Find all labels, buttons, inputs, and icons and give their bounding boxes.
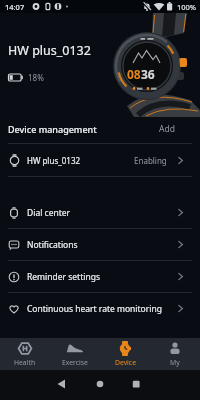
button[interactable]: Continuous heart rate monitoring [0, 293, 200, 324]
button[interactable]: Device [100, 338, 150, 370]
staticText: 100% [177, 2, 197, 12]
staticText: Device management [8, 123, 97, 135]
staticText: 14:07 [5, 2, 25, 12]
staticText: Notifications [27, 239, 78, 251]
button[interactable]: HW plus_0132 [0, 144, 200, 176]
staticText: Reminder settings [27, 271, 100, 283]
staticText: Exercise [62, 358, 88, 367]
staticText: HW plus_0132 [27, 155, 81, 166]
staticText: 18% [28, 72, 44, 83]
staticText: HW plus_0132 [8, 42, 91, 59]
staticText: Dial center [27, 207, 71, 219]
staticText: My [170, 358, 180, 367]
button[interactable]: My [150, 338, 200, 370]
button[interactable]: Device management [0, 114, 200, 143]
staticText: Add [159, 123, 175, 135]
button[interactable]: Exercise [50, 338, 100, 370]
staticText: Health [14, 358, 36, 367]
staticText: Device [115, 358, 136, 367]
button[interactable]: Dial center [0, 197, 200, 228]
button[interactable]: Health [0, 338, 50, 370]
button[interactable]: Notifications [0, 229, 200, 260]
staticText: 08 [127, 66, 141, 82]
staticText: Continuous heart rate monitoring [27, 303, 162, 315]
button[interactable]: Reminder settings [0, 261, 200, 292]
staticText: Enabling [134, 155, 167, 166]
staticText: 36 [141, 66, 155, 82]
